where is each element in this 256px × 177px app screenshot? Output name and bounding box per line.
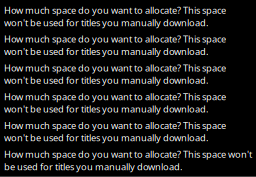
staticText: How much space do you want to allocate? … bbox=[4, 4, 226, 29]
staticText: How much space do you want to allocate? … bbox=[4, 148, 252, 173]
staticText: How much space do you want to allocate? … bbox=[4, 90, 226, 115]
staticText: How much space do you want to allocate? … bbox=[4, 33, 226, 58]
staticText: How much space do you want to allocate? … bbox=[4, 62, 226, 86]
staticText: How much space do you want to allocate? … bbox=[4, 119, 226, 144]
